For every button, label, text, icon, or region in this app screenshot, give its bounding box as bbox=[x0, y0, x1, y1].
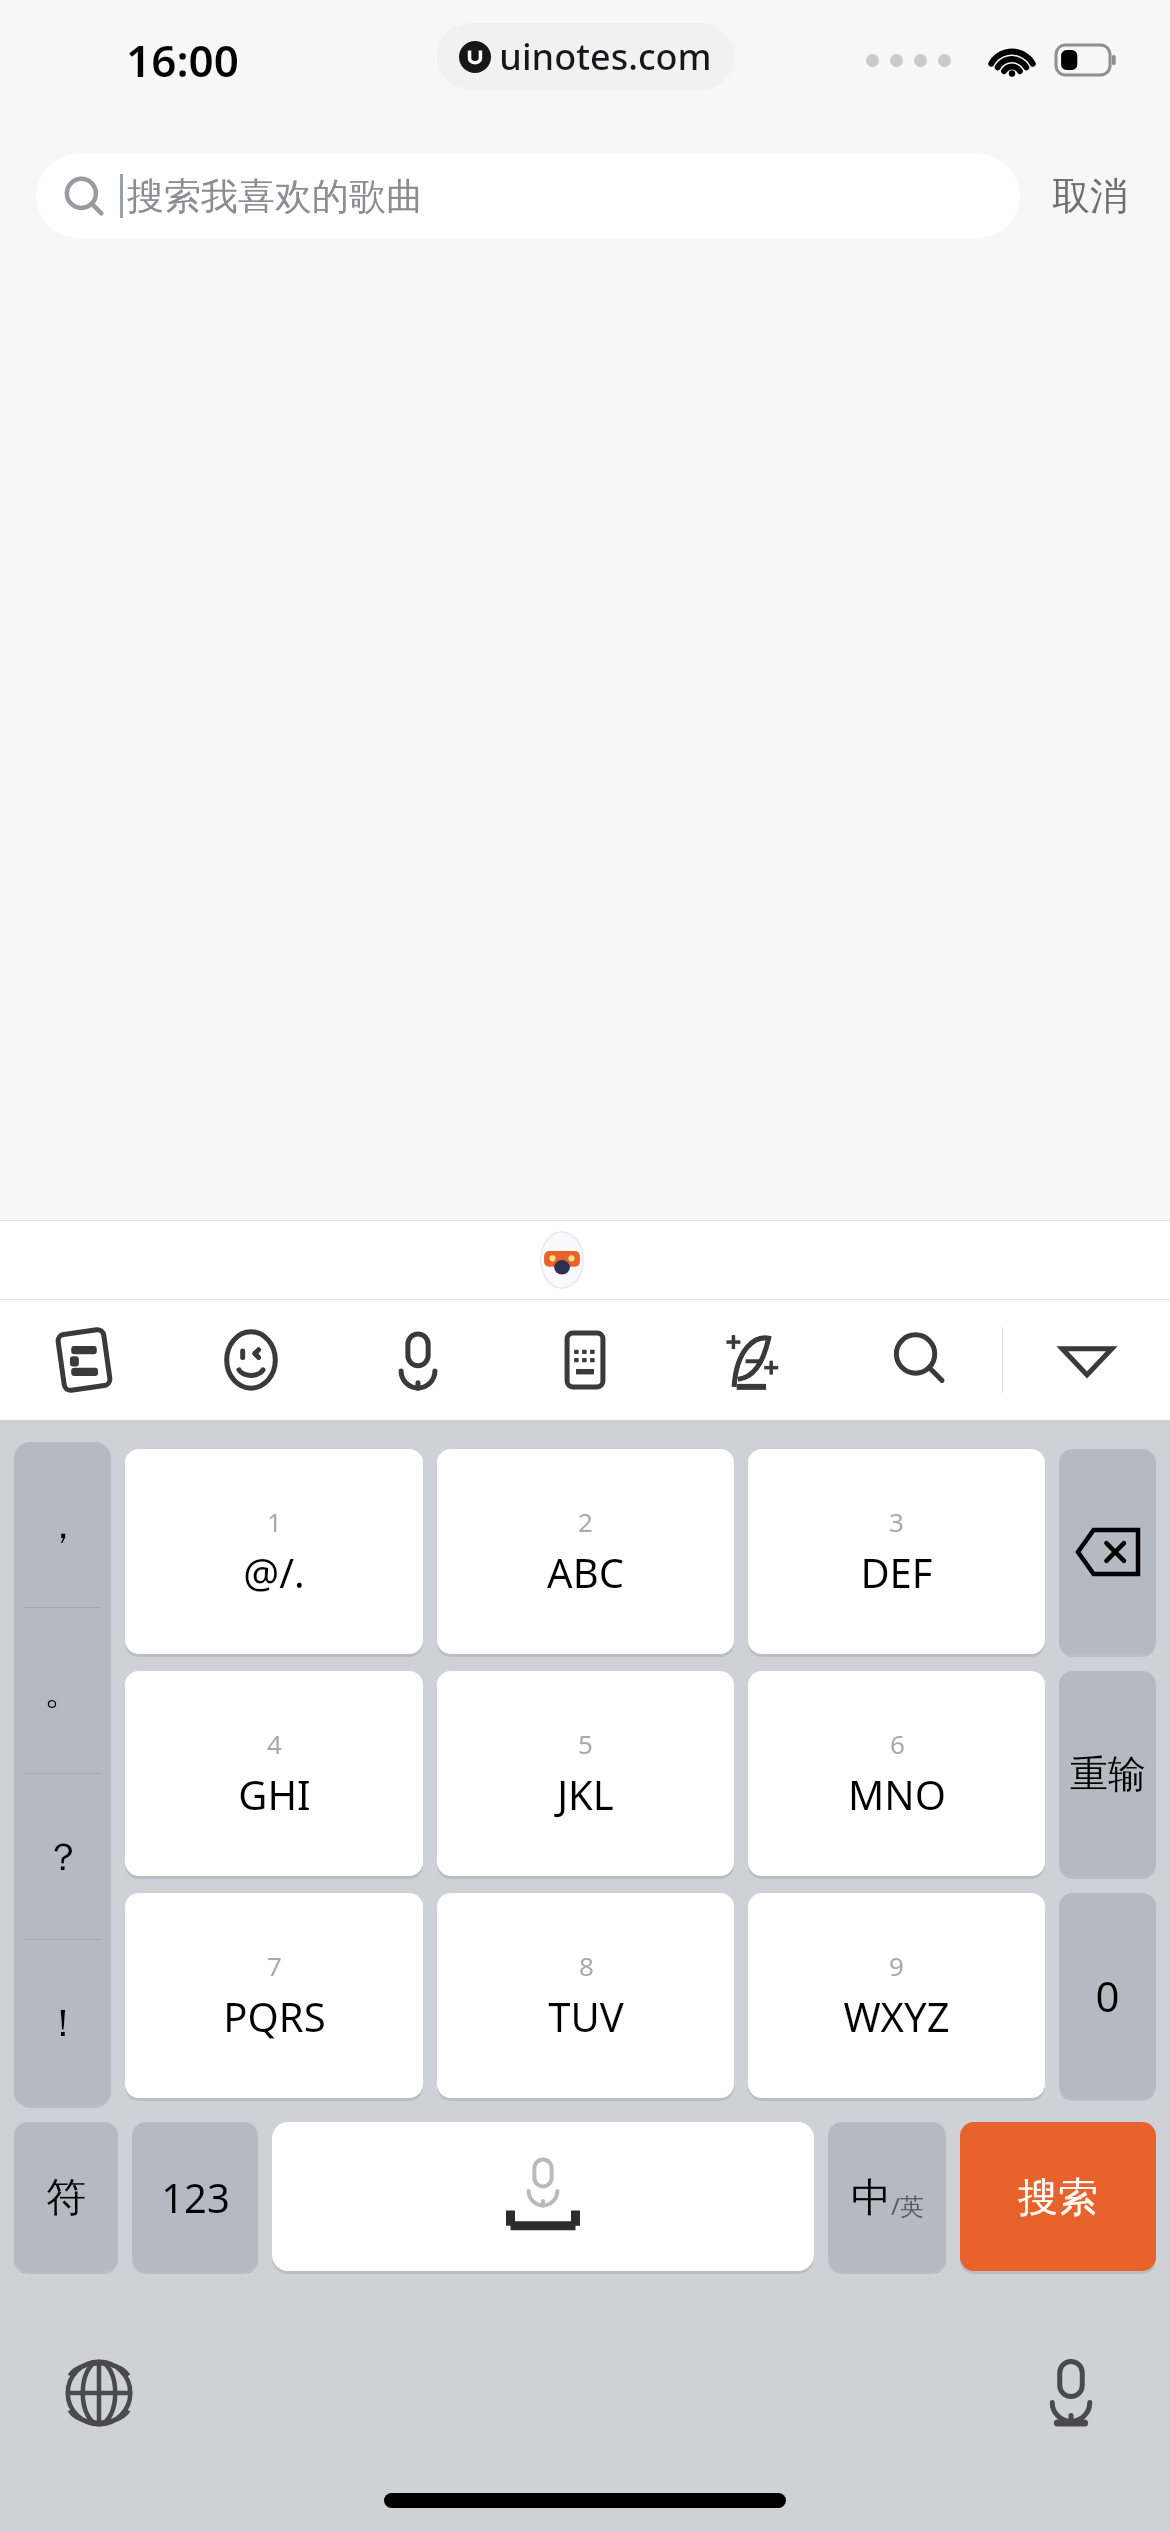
button[interactable]: Keyboard layout bbox=[501, 1300, 668, 1420]
staticText: 8 bbox=[579, 1948, 594, 1983]
button[interactable]: 取消 bbox=[1046, 158, 1134, 234]
button[interactable]: 。 bbox=[14, 1608, 111, 1773]
staticText: 5 bbox=[578, 1726, 593, 1761]
button[interactable]: 8 bbox=[437, 1893, 734, 2098]
button[interactable]: Voice input bbox=[334, 1300, 501, 1420]
button[interactable]: Space bbox=[272, 2122, 814, 2271]
staticText: 2 bbox=[578, 1504, 593, 1539]
button[interactable]: Emoji bbox=[167, 1300, 334, 1420]
other: Space bbox=[272, 2122, 814, 2271]
button[interactable]: 搜索 bbox=[960, 2122, 1156, 2271]
staticText: 1 bbox=[267, 1504, 282, 1539]
button[interactable]: ， bbox=[14, 1442, 111, 2105]
button[interactable]: 6 bbox=[748, 1671, 1045, 1876]
button[interactable]: 符 bbox=[14, 2122, 118, 2271]
staticText: /英 bbox=[891, 2189, 924, 2222]
button[interactable]: Change keyboard bbox=[44, 2338, 154, 2448]
button[interactable]: ！ bbox=[14, 1940, 111, 2105]
staticText: 123 bbox=[161, 2170, 230, 2224]
button[interactable]: 0 bbox=[1059, 1893, 1156, 2098]
staticText: 4 bbox=[267, 1726, 282, 1761]
staticText: WXYZ bbox=[843, 1989, 950, 2043]
staticText: @/. bbox=[243, 1545, 305, 1599]
button[interactable]: 7 bbox=[125, 1893, 423, 2098]
staticText: ， bbox=[44, 1501, 82, 1549]
button[interactable]: Voice input bbox=[1016, 2338, 1126, 2448]
staticText: 取消 bbox=[1052, 172, 1128, 220]
button[interactable]: Sogou bbox=[0, 1300, 167, 1420]
staticText: MNO bbox=[848, 1767, 946, 1821]
staticText: 符 bbox=[46, 2172, 86, 2222]
button[interactable]: 3 bbox=[748, 1449, 1045, 1654]
staticText: TUV bbox=[548, 1989, 624, 2043]
staticText: 搜索我喜欢的歌曲 bbox=[127, 173, 423, 220]
button[interactable]: 4 bbox=[125, 1671, 423, 1876]
button[interactable]: ？ bbox=[14, 1774, 111, 1939]
other: Delete bbox=[1059, 1449, 1156, 1654]
button[interactable]: ， bbox=[14, 1442, 111, 1607]
button[interactable]: Hide keyboard bbox=[1003, 1300, 1170, 1420]
staticText: 0 bbox=[1095, 1967, 1120, 2024]
staticText: 9 bbox=[889, 1948, 904, 1983]
button[interactable]: Assistant bbox=[534, 1232, 590, 1288]
staticText: 中 bbox=[851, 2172, 891, 2222]
button[interactable]: 搜索我喜欢的歌曲 bbox=[36, 154, 1020, 238]
button[interactable]: 重输 bbox=[1059, 1671, 1156, 1876]
staticText: ？ bbox=[44, 1833, 82, 1881]
button[interactable]: 9 bbox=[748, 1893, 1045, 2098]
staticText: 7 bbox=[267, 1948, 282, 1983]
staticText: 6 bbox=[890, 1726, 905, 1761]
button[interactable]: 2 bbox=[437, 1449, 734, 1654]
staticText: ！ bbox=[44, 1999, 82, 2047]
staticText: 搜索 bbox=[1018, 2172, 1098, 2222]
button[interactable]: 123 bbox=[132, 2122, 258, 2271]
staticText: 。 bbox=[44, 1667, 82, 1715]
button[interactable]: Delete bbox=[1059, 1449, 1156, 1654]
button[interactable]: Search bbox=[835, 1300, 1002, 1420]
staticText: uinotes.com bbox=[499, 32, 712, 81]
button[interactable]: 1 bbox=[125, 1449, 423, 1654]
staticText: JKL bbox=[557, 1767, 614, 1821]
button[interactable]: 5 bbox=[437, 1671, 734, 1876]
staticText: ABC bbox=[547, 1545, 624, 1599]
staticText: DEF bbox=[860, 1545, 933, 1599]
button[interactable]: Handwriting bbox=[668, 1300, 835, 1420]
button[interactable]: 中 bbox=[828, 2122, 946, 2271]
staticText: 重输 bbox=[1070, 1750, 1146, 1798]
staticText: 3 bbox=[889, 1504, 904, 1539]
staticText: GHI bbox=[238, 1767, 311, 1821]
staticText: 16:00 bbox=[126, 30, 239, 90]
staticText: PQRS bbox=[223, 1989, 326, 2043]
